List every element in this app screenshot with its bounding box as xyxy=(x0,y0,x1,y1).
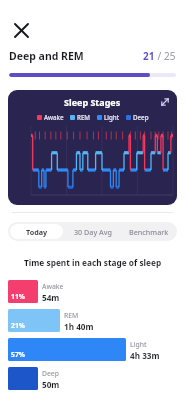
staticText: / 25 xyxy=(155,49,176,63)
button[interactable]: Benchmark xyxy=(121,222,177,241)
staticText: Deep and REM xyxy=(9,49,84,63)
staticText: 50m xyxy=(42,379,60,390)
button[interactable]: Expand chart xyxy=(156,93,174,111)
staticText: 54m xyxy=(42,292,60,303)
button[interactable]: 30 Day Avg xyxy=(65,222,121,241)
staticText: Benchmark xyxy=(129,227,169,237)
staticText: Light xyxy=(104,113,120,121)
staticText: 30 Day Avg xyxy=(74,227,113,237)
staticText: 57% xyxy=(11,350,25,359)
button[interactable]: Sleep Stages xyxy=(8,90,177,205)
staticText: Time spent in each stage of sleep xyxy=(24,257,162,268)
staticText: Light xyxy=(130,340,147,349)
staticText: 21% xyxy=(11,321,25,330)
button[interactable]: Deep xyxy=(8,367,177,390)
staticText: Today xyxy=(26,227,48,237)
staticText: REM xyxy=(77,113,91,121)
staticText: Deep xyxy=(133,113,149,121)
staticText: Awake xyxy=(42,282,64,291)
staticText: Sleep Stages xyxy=(64,96,121,108)
button[interactable]: 21% xyxy=(8,309,177,332)
staticText: 21 xyxy=(143,49,155,63)
button[interactable]: 57% xyxy=(8,338,177,361)
staticText: 4h 33m xyxy=(130,350,160,361)
staticText: 11% xyxy=(11,292,25,301)
staticText: Awake xyxy=(44,113,64,121)
staticText: 1h 40m xyxy=(64,321,94,332)
button[interactable]: Close xyxy=(6,15,36,45)
button[interactable]: Today xyxy=(10,224,63,239)
staticText: Deep xyxy=(42,369,59,378)
staticText: REM xyxy=(64,311,79,320)
button[interactable]: 11% xyxy=(8,280,177,303)
